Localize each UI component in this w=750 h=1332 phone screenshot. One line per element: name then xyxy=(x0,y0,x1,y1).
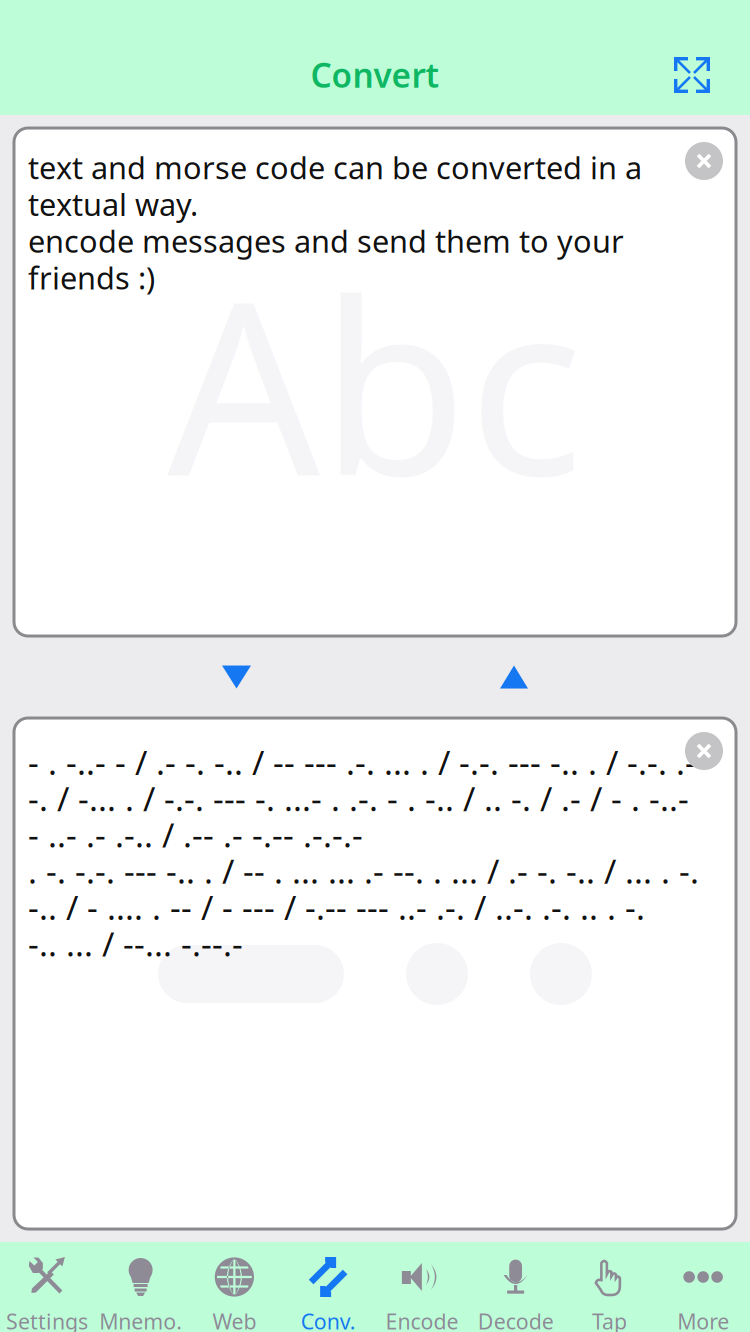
button[interactable]: Settings xyxy=(0,1242,94,1332)
staticText: Settings xyxy=(6,1307,88,1332)
button[interactable]: Expand xyxy=(674,57,710,93)
button[interactable]: Convert text to morse xyxy=(222,665,251,688)
button[interactable]: Conv. xyxy=(281,1242,375,1332)
staticText: - . -..- - / .- -. -.. / -- --- .-. ... … xyxy=(28,740,699,966)
button[interactable]: More xyxy=(656,1242,750,1332)
staticText: Convert xyxy=(310,53,439,97)
staticText: Encode xyxy=(385,1307,458,1332)
button[interactable]: Clear text xyxy=(685,142,723,180)
button[interactable]: Decode xyxy=(469,1242,563,1332)
button[interactable]: Convert morse to text xyxy=(500,665,528,688)
staticText: Mnemo. xyxy=(99,1307,182,1332)
button[interactable]: Clear morse xyxy=(685,732,723,770)
staticText: Tap xyxy=(592,1307,627,1332)
staticText: Conv. xyxy=(301,1307,356,1332)
staticText: Decode xyxy=(478,1307,554,1332)
staticText: Abc xyxy=(167,223,583,542)
button[interactable]: Web xyxy=(187,1242,281,1332)
staticText: text and morse code can be converted in … xyxy=(28,147,642,298)
button[interactable]: Mnemo. xyxy=(94,1242,188,1332)
button[interactable]: Tap xyxy=(562,1242,656,1332)
staticText: More xyxy=(677,1307,729,1332)
staticText: Web xyxy=(212,1307,256,1332)
button[interactable]: Encode xyxy=(375,1242,469,1332)
